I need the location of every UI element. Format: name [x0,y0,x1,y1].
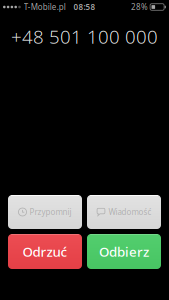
staticText: T-Mobile.pl [24,2,66,12]
button[interactable]: Odbierz [87,234,161,269]
staticText: 28% [131,2,148,12]
button[interactable]: Wiadomość [87,195,161,229]
staticText: Przypomnij [29,207,71,217]
button[interactable]: Przypomnij [8,195,82,229]
staticText: +48 501 100 000 [11,24,158,49]
staticText: Odbierz [99,243,149,260]
button[interactable]: Odrzuć [8,234,82,269]
staticText: 08:58 [73,2,95,12]
staticText: Odrzuć [22,243,67,260]
staticText: Wiadomość [108,207,151,217]
